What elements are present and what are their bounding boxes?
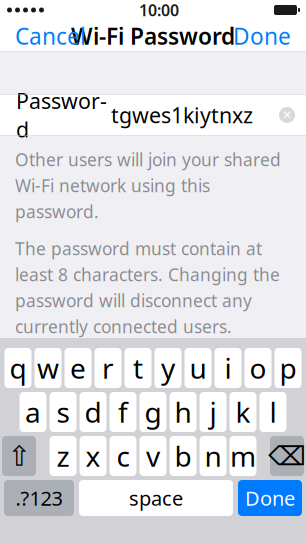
button[interactable]: w xyxy=(34,348,61,388)
staticText: a xyxy=(25,393,41,431)
staticText: t xyxy=(133,349,143,387)
staticText: Password xyxy=(16,87,107,143)
staticText: The password must contain at least 8 cha… xyxy=(15,237,280,338)
staticText: f xyxy=(118,393,128,431)
button[interactable]: r xyxy=(94,348,121,388)
staticText: v xyxy=(146,437,160,475)
button[interactable]: s xyxy=(49,392,76,432)
staticText: m xyxy=(230,437,256,475)
staticText: e xyxy=(70,349,86,387)
button[interactable]: Shift xyxy=(2,436,36,476)
staticText: ⇧ xyxy=(7,440,30,472)
staticText: c xyxy=(116,437,129,475)
staticText: p xyxy=(279,349,296,387)
staticText: i xyxy=(224,349,231,387)
staticText: space xyxy=(129,485,183,511)
button[interactable]: u xyxy=(184,348,211,388)
staticText: 10:00 xyxy=(139,0,179,21)
button[interactable]: g xyxy=(139,392,166,432)
button[interactable]: f xyxy=(109,392,136,432)
button[interactable]: Cancel xyxy=(6,20,95,52)
staticText: y xyxy=(161,349,175,387)
button[interactable]: Delete xyxy=(270,436,304,476)
button[interactable]: c xyxy=(109,436,136,476)
button[interactable]: x xyxy=(79,436,106,476)
staticText: z xyxy=(56,437,69,475)
button[interactable]: y xyxy=(154,348,181,388)
button[interactable]: d xyxy=(79,392,106,432)
staticText: Cancel xyxy=(15,21,86,51)
button[interactable]: .?123 xyxy=(4,480,74,516)
staticText: k xyxy=(235,393,250,431)
button[interactable]: t xyxy=(124,348,151,388)
button[interactable]: p xyxy=(274,348,301,388)
staticText: n xyxy=(204,437,221,475)
staticText: u xyxy=(189,349,206,387)
staticText: h xyxy=(174,393,191,431)
staticText: l xyxy=(269,393,276,431)
button[interactable]: a xyxy=(19,392,46,432)
staticText: Wi-Fi Password xyxy=(71,21,235,51)
button[interactable]: k xyxy=(229,392,256,432)
staticText: o xyxy=(249,349,266,387)
staticText: ✕ xyxy=(282,108,292,122)
button[interactable]: Done xyxy=(238,480,302,516)
button[interactable]: Done xyxy=(224,20,300,52)
staticText: r xyxy=(102,349,114,387)
staticText: tgwes1kiytnxz xyxy=(111,101,253,129)
button[interactable]: v xyxy=(139,436,166,476)
button[interactable]: n xyxy=(199,436,226,476)
staticText: q xyxy=(9,349,26,387)
staticText: s xyxy=(56,393,69,431)
staticText: x xyxy=(85,437,100,475)
button[interactable]: b xyxy=(169,436,196,476)
button[interactable]: space xyxy=(79,480,233,516)
staticText: d xyxy=(84,393,101,431)
staticText: Done xyxy=(245,485,295,511)
staticText: Done xyxy=(233,21,291,51)
button[interactable]: e xyxy=(64,348,91,388)
button[interactable]: m xyxy=(229,436,256,476)
staticText: .?123 xyxy=(15,485,62,511)
button[interactable]: l xyxy=(259,392,286,432)
button[interactable]: z xyxy=(49,436,76,476)
button[interactable]: Clear text xyxy=(272,100,302,130)
button[interactable]: j xyxy=(199,392,226,432)
staticText: j xyxy=(209,393,216,431)
staticText: ⌫ xyxy=(268,441,306,471)
button[interactable]: i xyxy=(214,348,241,388)
button[interactable]: q xyxy=(4,348,31,388)
staticText: Other users will join your shared Wi-Fi … xyxy=(15,148,281,223)
staticText: g xyxy=(144,393,161,431)
staticText: b xyxy=(174,437,191,475)
button[interactable]: o xyxy=(244,348,271,388)
staticText: w xyxy=(37,349,59,387)
button[interactable]: h xyxy=(169,392,196,432)
